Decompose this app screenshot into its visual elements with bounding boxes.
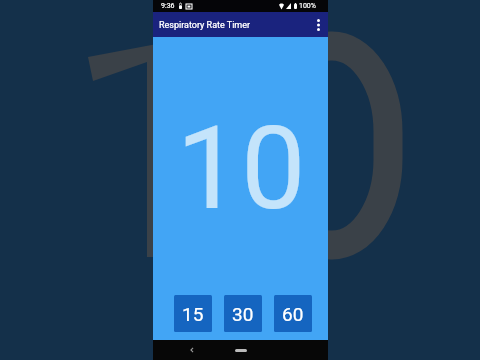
- button[interactable]: 15: [174, 295, 212, 332]
- button[interactable]: More options: [308, 15, 328, 35]
- staticText: 100%: [299, 2, 316, 10]
- staticText: 10: [176, 101, 306, 236]
- staticText: Respiratory Rate Timer: [159, 20, 251, 31]
- staticText: 30: [232, 303, 254, 325]
- button[interactable]: 30: [224, 295, 262, 332]
- staticText: 60: [282, 303, 304, 325]
- button[interactable]: 60: [274, 295, 312, 332]
- staticText: 15: [182, 303, 204, 325]
- button[interactable]: Back: [186, 344, 198, 356]
- staticText: 9:36: [161, 2, 175, 10]
- button[interactable]: Home: [235, 349, 247, 352]
